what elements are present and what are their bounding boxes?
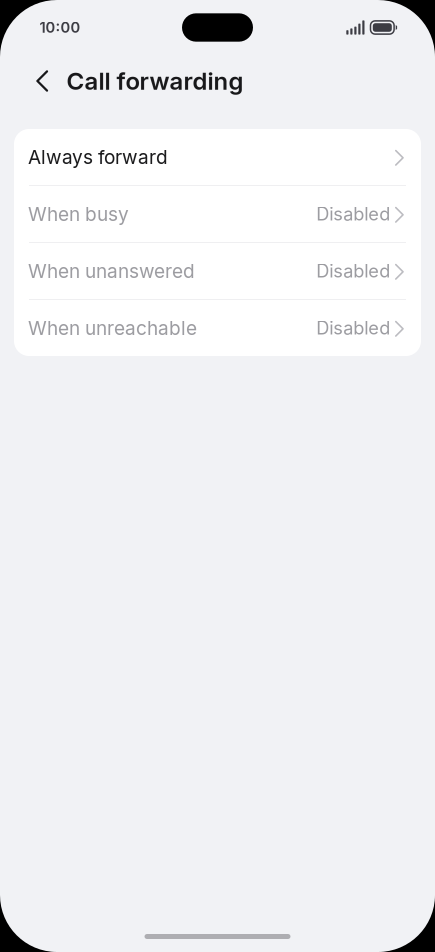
button[interactable]: When busy — [14, 186, 421, 242]
button[interactable]: Call forwarding — [36, 58, 243, 104]
staticText: Disabled — [316, 260, 390, 282]
staticText: Disabled — [316, 317, 390, 339]
button[interactable]: Always forward — [14, 129, 421, 185]
staticText: When busy — [28, 202, 129, 225]
staticText: When unanswered — [28, 259, 195, 282]
staticText: Call forwarding — [66, 66, 243, 96]
staticText: When unreachable — [28, 316, 197, 339]
staticText: Disabled — [316, 203, 390, 225]
staticText: 10:00 — [39, 19, 80, 36]
staticText: Always forward — [28, 145, 168, 168]
button[interactable]: When unreachable — [14, 300, 421, 356]
button[interactable]: When unanswered — [14, 243, 421, 299]
